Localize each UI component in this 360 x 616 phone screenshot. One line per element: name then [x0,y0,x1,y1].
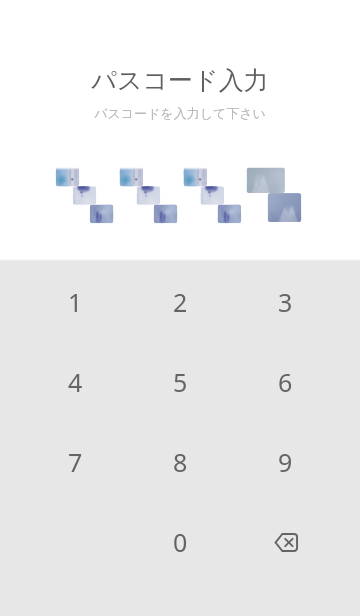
staticText: 2 [173,285,188,319]
staticText: 1 [68,285,83,319]
staticText: 3 [278,285,293,319]
button[interactable]: Delete [233,502,338,582]
staticText: 8 [173,445,188,479]
button[interactable]: 8 [128,422,233,502]
staticText: 4 [68,365,83,399]
button[interactable]: 1 [23,262,128,342]
staticText: 6 [278,365,293,399]
staticText: 9 [278,445,293,479]
staticText: パスコード入力 [91,65,269,96]
staticText: パスコードを入力して下さい [94,105,266,121]
button[interactable]: 6 [233,342,338,422]
button[interactable]: 3 [233,262,338,342]
staticText: 7 [68,445,83,479]
button[interactable]: 5 [128,342,233,422]
button[interactable]: 2 [128,262,233,342]
staticText: 5 [173,365,188,399]
button[interactable]: 9 [233,422,338,502]
staticText: 0 [173,525,188,559]
button[interactable]: 4 [23,342,128,422]
button[interactable]: 7 [23,422,128,502]
button[interactable]: 0 [128,502,233,582]
